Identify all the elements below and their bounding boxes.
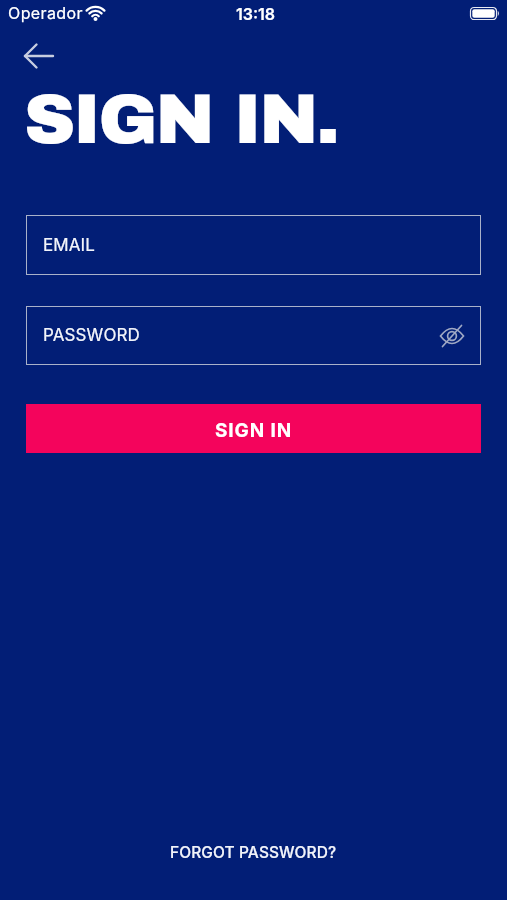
button[interactable]: SIGN IN xyxy=(26,404,481,453)
staticText: FORGOT PASSWORD? xyxy=(170,843,337,862)
staticText: PASSWORD xyxy=(43,325,140,346)
button[interactable]: FORGOT PASSWORD? xyxy=(0,838,507,866)
staticText: EMAIL xyxy=(43,235,95,256)
button[interactable]: PASSWORD xyxy=(26,306,481,365)
staticText: 13:18 xyxy=(2,4,507,23)
staticText: Operador xyxy=(8,3,83,22)
staticText: SIGN IN. xyxy=(24,81,338,158)
staticText: SIGN IN xyxy=(215,419,293,442)
button[interactable]: EMAIL xyxy=(26,215,481,275)
button[interactable] xyxy=(17,40,61,72)
